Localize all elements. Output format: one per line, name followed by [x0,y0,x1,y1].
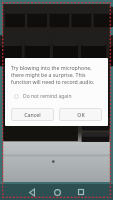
button[interactable]: Back [25,185,39,199]
staticText: Try blowing into the microphone, there m… [11,64,102,85]
button[interactable]: Home [50,185,64,199]
button[interactable]: OK [59,108,102,121]
staticText: Cancel [24,111,41,118]
staticText: OK [77,111,85,118]
button[interactable]: Recent apps [74,185,88,199]
button[interactable]: Do not remind again [11,93,102,100]
staticText: Do not remind again [23,93,72,100]
button[interactable]: Cancel [11,108,54,121]
